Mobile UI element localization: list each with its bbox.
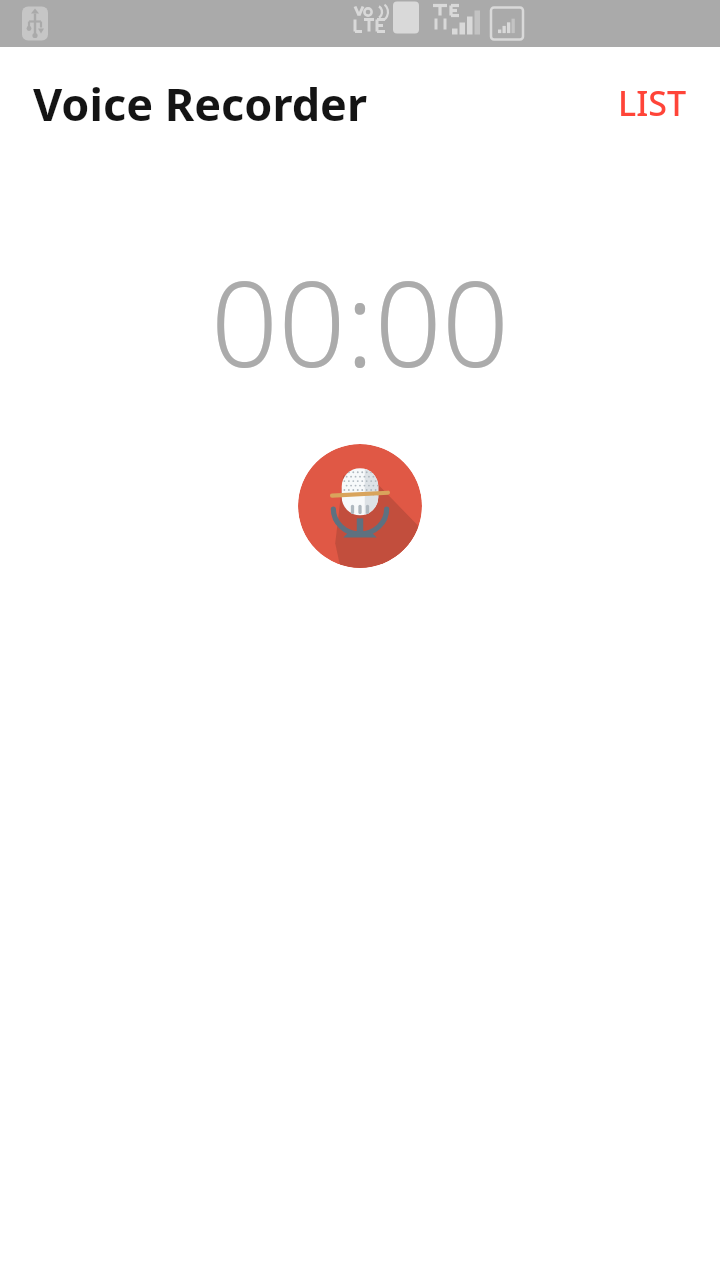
staticText: LIST — [618, 80, 686, 126]
button[interactable]: LIST — [598, 66, 706, 140]
staticText: 00:00 — [0, 241, 720, 402]
staticText: Voice Recorder — [33, 73, 368, 134]
button[interactable]: Start recording — [298, 444, 422, 568]
